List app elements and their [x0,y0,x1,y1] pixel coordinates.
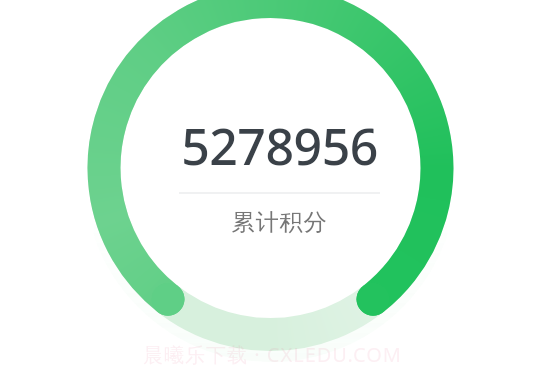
staticText: 累计积分 [231,208,327,237]
button[interactable]: 累计积分进度环 [0,0,544,372]
staticText: 5278956 [181,112,378,180]
button[interactable]: 5278956 [174,112,384,211]
staticText: 晨曦乐下载 · CXLEDU.COM [143,341,402,368]
